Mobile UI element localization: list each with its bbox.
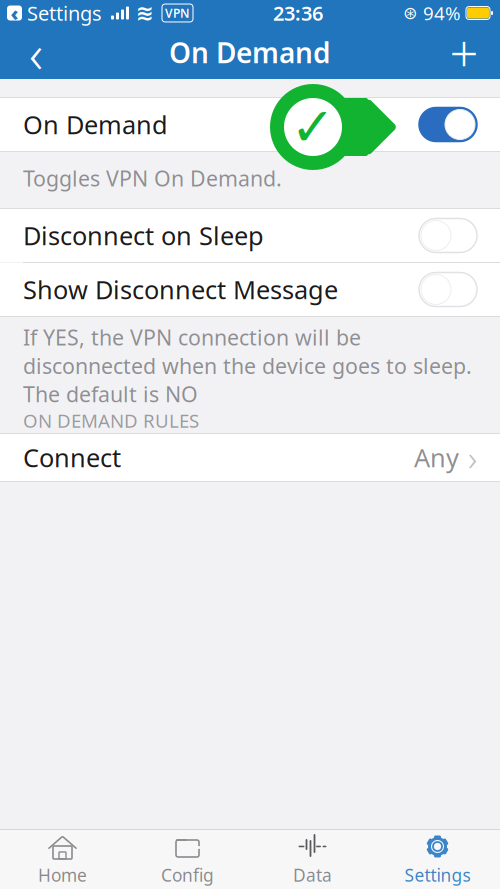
button[interactable]: Add	[440, 26, 488, 78]
staticText: Settings	[404, 863, 470, 886]
button[interactable]: Data	[250, 830, 375, 889]
staticText: ›	[468, 434, 477, 480]
staticText: ≋	[136, 1, 154, 25]
staticText: On Demand	[169, 34, 331, 71]
button[interactable]: Settings	[375, 830, 500, 889]
staticText: Home	[38, 863, 87, 886]
button[interactable]: Home	[0, 830, 125, 889]
button[interactable]: Show Disconnect Message	[0, 263, 500, 316]
staticText: Connect	[23, 441, 121, 474]
staticText: 94%	[423, 1, 461, 25]
staticText: Data	[293, 863, 332, 886]
staticText: ⊛	[403, 3, 418, 23]
staticText: Config	[161, 863, 214, 886]
staticText: Disconnect on Sleep	[23, 219, 264, 252]
staticText: 23:36	[273, 0, 323, 26]
button[interactable]: Connect	[0, 434, 500, 481]
staticText: Settings	[27, 0, 102, 26]
staticText: Show Disconnect Message	[23, 273, 338, 306]
staticText: Toggles VPN On Demand.	[23, 164, 282, 192]
button[interactable]: Disconnect on Sleep	[0, 209, 500, 262]
staticText: ✓	[290, 97, 335, 157]
button[interactable]: Config	[125, 830, 250, 889]
staticText: If YES, the VPN connection will be disco…	[23, 323, 472, 408]
staticText: Any	[414, 441, 459, 474]
staticText: ‹	[29, 17, 43, 88]
staticText: VPN	[165, 5, 190, 21]
staticText: ‹	[10, 0, 18, 26]
staticText: +	[449, 19, 478, 86]
staticText: ON DEMAND RULES	[23, 408, 199, 433]
button[interactable]: Back	[12, 26, 60, 78]
button[interactable]: On Demand	[0, 98, 500, 151]
staticText: On Demand	[23, 108, 168, 141]
